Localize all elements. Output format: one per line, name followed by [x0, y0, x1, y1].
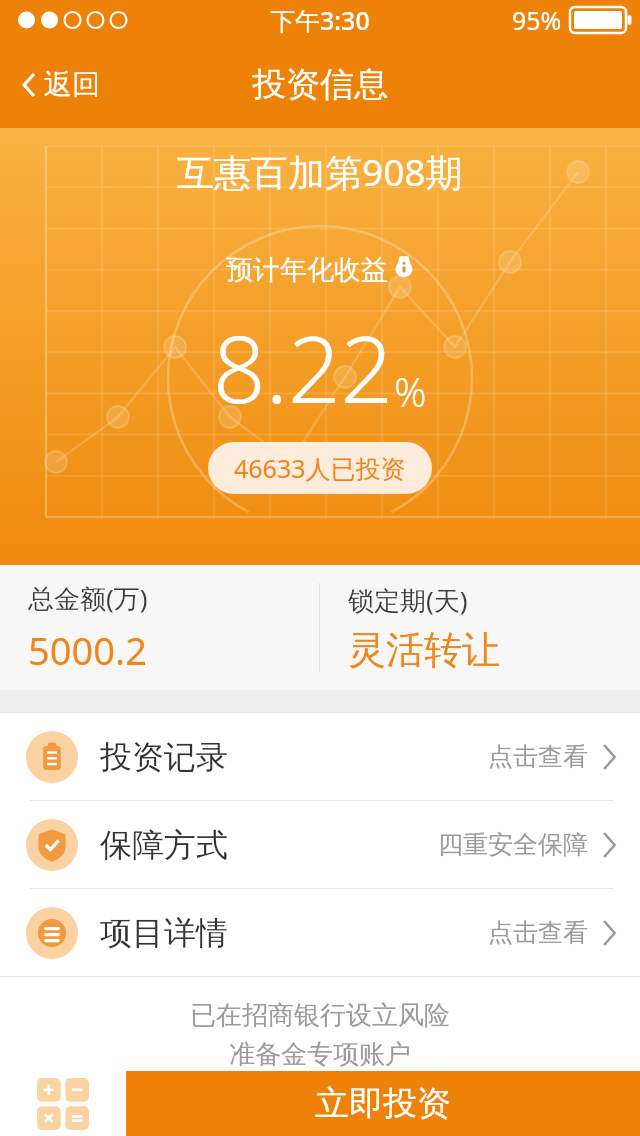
staticText: % — [394, 364, 427, 418]
button[interactable]: 项目详情 — [0, 889, 640, 976]
staticText: 项目详情 — [100, 913, 228, 953]
staticText: 下午3:30 — [270, 3, 370, 37]
button[interactable]: 收益计算器 — [0, 1071, 126, 1136]
staticText: 准备金专项账户 — [229, 1038, 411, 1071]
staticText: 95% — [512, 3, 562, 37]
staticText: 锁定期(天) — [348, 582, 468, 618]
staticText: 点击查看 — [488, 741, 588, 772]
staticText: 四重安全保障 — [438, 829, 588, 860]
button[interactable]: 投资记录 — [0, 713, 640, 800]
staticText: 预计年化收益 — [226, 253, 388, 287]
staticText: 投资信息 — [252, 63, 388, 106]
staticText: 保障方式 — [100, 825, 228, 865]
staticText: 8.22 — [213, 305, 394, 430]
staticText: 46633人已投资 — [234, 451, 406, 485]
staticText: 返回 — [44, 67, 100, 102]
staticText: 互惠百加第908期 — [177, 146, 463, 197]
staticText: 5000.2 — [28, 624, 147, 676]
staticText: 灵活转让 — [348, 626, 500, 674]
button[interactable]: 立即投资 — [126, 1071, 640, 1136]
button[interactable]: 保障方式 — [0, 801, 640, 888]
staticText: 已在招商银行设立风险 — [190, 999, 450, 1032]
staticText: 点击查看 — [488, 917, 588, 948]
staticText: 总金额(万) — [28, 580, 148, 616]
button[interactable]: 收益说明 — [393, 255, 415, 277]
button[interactable]: 46633人已投资 — [208, 442, 432, 494]
staticText: 投资记录 — [100, 737, 228, 777]
staticText: 立即投资 — [315, 1082, 451, 1125]
button[interactable]: 返回 — [0, 55, 122, 114]
